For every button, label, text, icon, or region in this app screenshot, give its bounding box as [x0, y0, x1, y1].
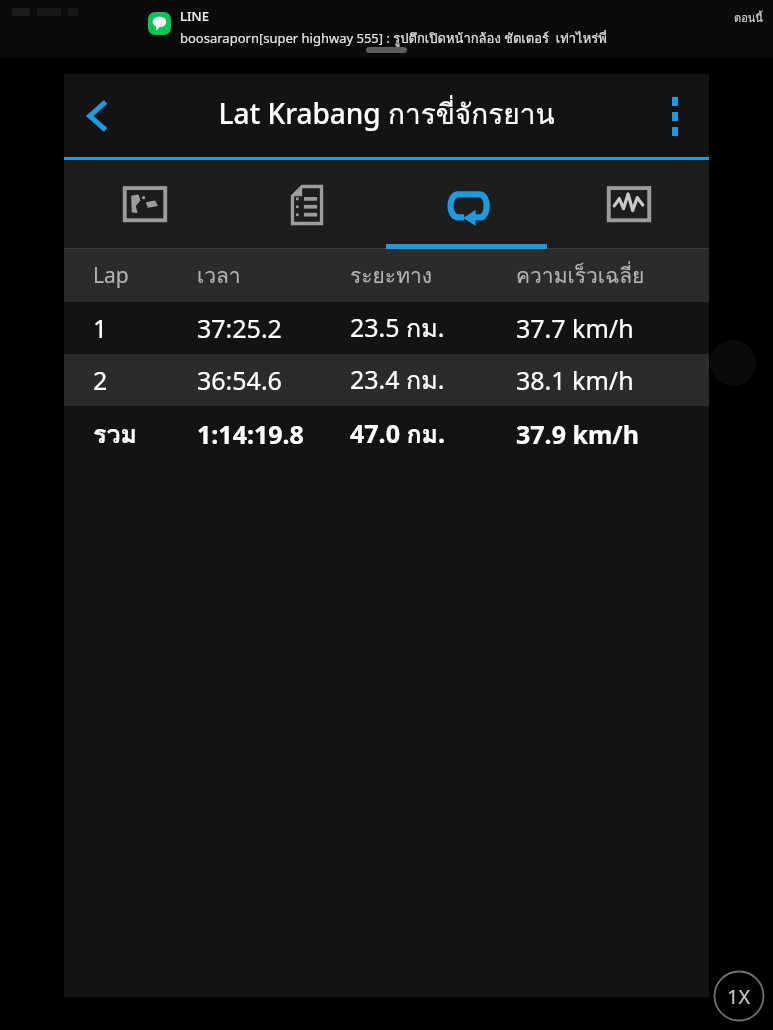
- button[interactable]: 1: [64, 302, 709, 354]
- staticText: 37.9 km/h: [516, 417, 639, 451]
- button[interactable]: Graph: [548, 160, 709, 249]
- button[interactable]: More options: [649, 90, 701, 142]
- button[interactable]: รวม: [64, 406, 709, 461]
- staticText: รวม: [93, 414, 137, 454]
- staticText: 23.4 กม.: [350, 360, 445, 400]
- staticText: ตอนนี้: [734, 9, 763, 26]
- staticText: boosaraporn[super highway 555] : รูปตึกเ…: [180, 28, 607, 49]
- button[interactable]: Map: [64, 160, 226, 249]
- staticText: เวลา: [197, 259, 241, 292]
- button[interactable]: Details: [226, 160, 387, 249]
- staticText: Lap: [93, 261, 129, 290]
- button[interactable]: Zoom 1X: [713, 970, 765, 1022]
- staticText: 1:14:19.8: [197, 417, 304, 451]
- staticText: 23.5 กม.: [350, 308, 445, 348]
- button[interactable]: Back: [68, 87, 126, 145]
- staticText: Lat Krabang การขี่จักรยาน: [218, 92, 555, 137]
- staticText: 47.0 กม.: [350, 414, 446, 454]
- staticText: 1: [93, 311, 108, 345]
- staticText: 37:25.2: [197, 311, 282, 345]
- staticText: 36:54.6: [197, 363, 282, 397]
- button[interactable]: Lap: [64, 249, 709, 302]
- button[interactable]: 2: [64, 354, 709, 406]
- staticText: ความเร็วเฉลี่ย: [516, 259, 645, 292]
- staticText: 2: [93, 363, 108, 397]
- staticText: ระยะทาง: [350, 259, 433, 292]
- staticText: 37.7 km/h: [516, 311, 634, 345]
- staticText: 38.1 km/h: [516, 363, 634, 397]
- staticText: LINE: [180, 7, 209, 25]
- staticText: 1X: [727, 983, 751, 1010]
- button[interactable]: Laps: [387, 160, 548, 249]
